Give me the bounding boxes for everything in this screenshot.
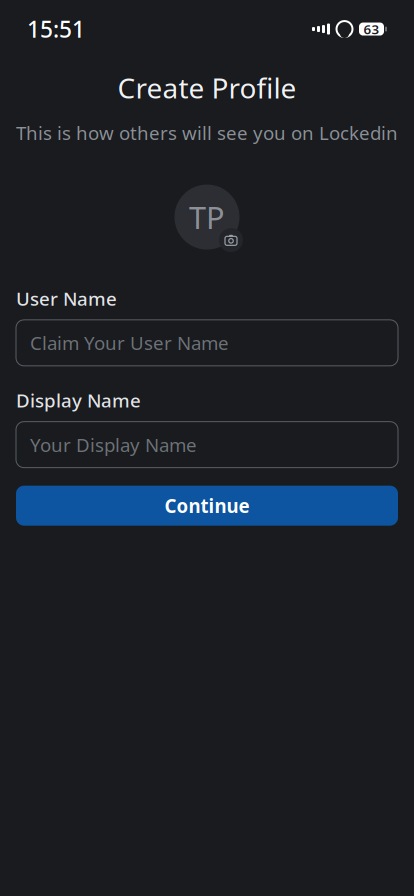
staticText: User Name: [16, 286, 117, 311]
staticText: Claim Your User Name: [30, 330, 229, 355]
staticText: Display Name: [16, 388, 141, 413]
staticText: Continue: [164, 493, 249, 518]
staticText: TP: [189, 197, 225, 237]
button[interactable]: Your Display Name: [16, 422, 398, 468]
button[interactable]: Continue: [16, 486, 398, 526]
staticText: Your Display Name: [30, 432, 197, 457]
button[interactable]: Claim Your User Name: [16, 320, 398, 366]
button[interactable]: Change profile photo: [171, 182, 243, 252]
staticText: 15:51: [27, 14, 85, 44]
staticText: Create Profile: [117, 69, 296, 106]
staticText: 63: [363, 20, 379, 38]
staticText: This is how others will see you on Locke…: [16, 120, 398, 145]
